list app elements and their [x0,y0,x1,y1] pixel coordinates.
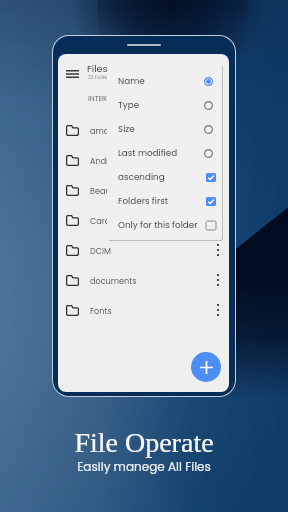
button[interactable]: More options for Cardboard [210,210,226,230]
button[interactable]: More options for BeautyPlus [210,180,226,200]
button[interactable]: Open navigation drawer [62,63,83,84]
staticText: Easily manege All Files [0,458,288,475]
button[interactable]: ascending [107,165,222,189]
staticText: Name [118,75,145,87]
button[interactable]: More options for documents [210,270,226,290]
staticText: Files [87,62,108,75]
button[interactable]: Last modified [107,141,222,165]
staticText: Size [118,123,135,135]
staticText: ascending [118,171,165,183]
staticText: File Operate [0,427,288,458]
button[interactable]: Folders first [107,189,222,213]
button[interactable]: BeautyPlus [58,175,229,205]
button[interactable]: Android [58,145,229,175]
button[interactable]: Cardboard [58,205,229,235]
button[interactable]: Type [107,93,222,117]
staticText: INTERNAL STORAGE [88,94,153,104]
staticText: Cardboard [90,215,135,226]
staticText: amazonmusic [90,125,148,136]
button[interactable]: amazonmusic [58,115,229,145]
button[interactable]: More options for Fonts [210,300,226,320]
staticText: Android [90,155,122,166]
button[interactable]: documents [58,265,229,295]
button[interactable]: More options for amazonmusic [210,120,226,140]
staticText: Folders first [118,195,168,207]
staticText: BeautyPlus [90,185,135,196]
button[interactable]: Add new file [191,352,221,382]
staticText: Last modified [118,147,178,159]
button[interactable]: Only for this folder [107,213,222,237]
button[interactable]: Fonts [58,295,229,325]
button[interactable]: More options for DCIM [210,240,226,260]
staticText: Only for this folder [118,219,198,231]
staticText: Type [118,99,140,111]
button[interactable]: Size [107,117,222,141]
staticText: 23 Folders [88,74,112,80]
staticText: Fonts [90,305,112,316]
button[interactable]: Name [107,69,222,93]
button[interactable]: DCIM [58,235,229,265]
staticText: documents [90,275,137,286]
staticText: DCIM [90,245,111,256]
button[interactable]: More options for Android [210,150,226,170]
